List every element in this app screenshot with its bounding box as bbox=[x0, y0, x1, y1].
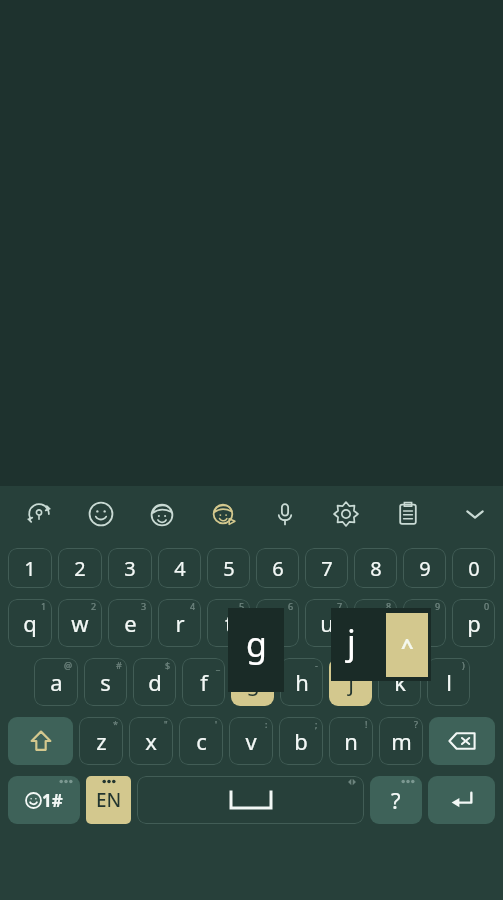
staticText: # bbox=[116, 659, 122, 671]
staticText: ? bbox=[414, 718, 418, 730]
button[interactable]: EN bbox=[86, 776, 131, 824]
staticText: EN bbox=[96, 787, 122, 813]
button[interactable]: i bbox=[354, 599, 397, 647]
button[interactable]: 7 bbox=[305, 548, 348, 588]
staticText: m bbox=[391, 726, 412, 756]
staticText: @ bbox=[64, 659, 73, 671]
staticText: 8 bbox=[386, 600, 392, 612]
button[interactable]: g bbox=[231, 658, 274, 706]
button[interactable]: Emoji bbox=[79, 492, 123, 536]
button[interactable]: Collapse toolbar bbox=[447, 490, 503, 538]
staticText: l bbox=[446, 667, 452, 697]
button[interactable]: z bbox=[79, 717, 123, 765]
button[interactable]: p bbox=[452, 599, 495, 647]
staticText: 9 bbox=[419, 555, 431, 582]
button[interactable]: Shift bbox=[8, 717, 73, 765]
staticText: 2 bbox=[74, 555, 86, 582]
staticText: q bbox=[23, 608, 37, 638]
staticText: 9 bbox=[435, 600, 441, 612]
button[interactable]: Backspace bbox=[429, 717, 495, 765]
staticText: 7 bbox=[321, 555, 333, 582]
staticText: o bbox=[418, 608, 432, 638]
button[interactable]: 3 bbox=[108, 548, 152, 588]
staticText: b bbox=[294, 726, 308, 756]
staticText: 7 bbox=[337, 600, 343, 612]
staticText: k bbox=[394, 667, 406, 697]
staticText: & bbox=[262, 659, 269, 671]
staticText: w bbox=[71, 608, 89, 638]
staticText: 8 bbox=[370, 555, 382, 582]
button[interactable]: Clipboard bbox=[386, 492, 430, 536]
button[interactable]: f bbox=[182, 658, 225, 706]
button[interactable]: 1# bbox=[8, 776, 80, 824]
button[interactable]: n bbox=[329, 717, 373, 765]
staticText: * bbox=[113, 718, 118, 730]
button[interactable]: e bbox=[108, 599, 152, 647]
staticText: ) bbox=[462, 659, 465, 671]
button[interactable]: 9 bbox=[403, 548, 446, 588]
staticText: - bbox=[315, 659, 318, 671]
staticText: 1 bbox=[41, 600, 47, 612]
staticText: $ bbox=[165, 659, 171, 671]
button[interactable]: v bbox=[229, 717, 273, 765]
staticText: 1# bbox=[42, 789, 63, 812]
staticText: 4 bbox=[174, 555, 186, 582]
staticText: p bbox=[467, 608, 481, 638]
button[interactable]: 6 bbox=[256, 548, 299, 588]
staticText: v bbox=[245, 726, 257, 756]
staticText: ? bbox=[391, 785, 401, 815]
button[interactable]: Voice input bbox=[263, 492, 307, 536]
button[interactable]: Space bbox=[137, 776, 364, 824]
staticText: " bbox=[164, 718, 168, 730]
button[interactable]: ? bbox=[370, 776, 422, 824]
staticText: n bbox=[344, 726, 358, 756]
button[interactable]: d bbox=[133, 658, 176, 706]
staticText: 3 bbox=[124, 555, 136, 582]
button[interactable]: m bbox=[379, 717, 423, 765]
button[interactable]: h bbox=[280, 658, 323, 706]
staticText: x bbox=[145, 726, 157, 756]
staticText: 0 bbox=[484, 600, 490, 612]
button[interactable]: Avatar bbox=[202, 492, 246, 536]
button[interactable]: 5 bbox=[207, 548, 250, 588]
button[interactable]: 2 bbox=[58, 548, 102, 588]
staticText: c bbox=[196, 726, 207, 756]
staticText: u bbox=[320, 608, 334, 638]
button[interactable]: s bbox=[84, 658, 127, 706]
button[interactable]: 1 bbox=[8, 548, 52, 588]
button[interactable]: a bbox=[34, 658, 78, 706]
staticText: ; bbox=[315, 718, 318, 730]
button[interactable]: Translate bbox=[17, 492, 61, 536]
button[interactable]: q bbox=[8, 599, 52, 647]
staticText: f bbox=[200, 667, 208, 697]
button[interactable]: k bbox=[378, 658, 421, 706]
button[interactable]: l bbox=[427, 658, 470, 706]
button[interactable]: x bbox=[129, 717, 173, 765]
button[interactable]: u bbox=[305, 599, 348, 647]
button[interactable]: y bbox=[256, 599, 299, 647]
staticText: 5 bbox=[239, 600, 245, 612]
button[interactable]: b bbox=[279, 717, 323, 765]
button[interactable]: o bbox=[403, 599, 446, 647]
staticText: 4 bbox=[190, 600, 196, 612]
staticText: g bbox=[246, 621, 267, 667]
button[interactable]: c bbox=[179, 717, 223, 765]
button[interactable]: w bbox=[58, 599, 102, 647]
button[interactable]: 8 bbox=[354, 548, 397, 588]
button[interactable]: t bbox=[207, 599, 250, 647]
button[interactable]: j bbox=[329, 658, 372, 706]
button[interactable]: r bbox=[158, 599, 201, 647]
button[interactable]: 4 bbox=[158, 548, 201, 588]
button[interactable]: 0 bbox=[452, 548, 495, 588]
staticText: a bbox=[50, 667, 63, 697]
button[interactable]: Enter bbox=[428, 776, 495, 824]
staticText: ! bbox=[365, 718, 368, 730]
button[interactable]: Sticker bbox=[140, 492, 184, 536]
button[interactable]: Settings bbox=[324, 492, 368, 536]
staticText: g bbox=[246, 667, 260, 697]
staticText: 6 bbox=[272, 555, 284, 582]
